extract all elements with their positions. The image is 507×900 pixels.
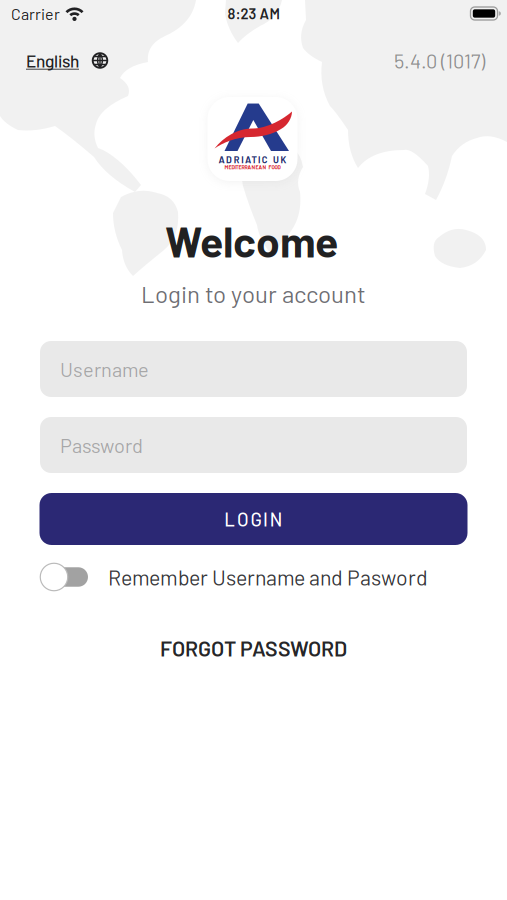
staticText: FORGOT PASSWORD: [160, 635, 347, 660]
staticText: Password: [60, 433, 143, 457]
staticText: 5.4.0 (1017): [394, 49, 485, 72]
staticText: Username: [60, 357, 149, 381]
staticText: Carrier: [11, 4, 60, 23]
staticText: Login to your account: [141, 279, 366, 308]
staticText: LOGIN: [224, 508, 283, 530]
staticText: English: [26, 50, 79, 71]
staticText: 8:23 AM: [227, 5, 279, 22]
button[interactable]: English: [0, 50, 200, 71]
button[interactable]: Password: [40, 417, 467, 473]
button[interactable]: Remember Username and Pasword: [0, 563, 507, 591]
staticText: MEDITERRANEAN FOOD: [224, 164, 280, 170]
staticText: Welcome: [165, 215, 338, 265]
button[interactable]: FORGOT PASSWORD: [160, 635, 347, 660]
button[interactable]: LOGIN: [39, 493, 467, 545]
staticText: Remember Username and Pasword: [108, 564, 428, 589]
staticText: ADRIATIC UK: [218, 154, 286, 165]
button[interactable]: Username: [40, 341, 467, 397]
